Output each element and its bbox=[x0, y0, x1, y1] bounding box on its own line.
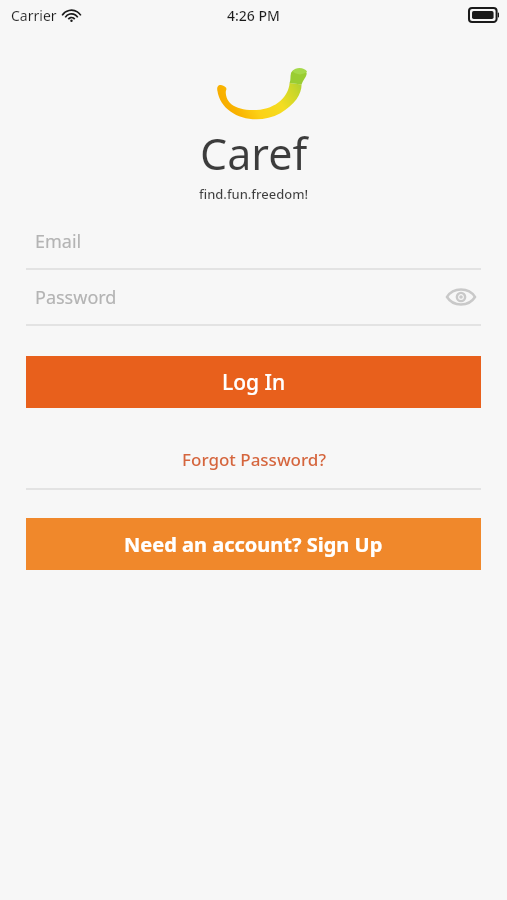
button[interactable]: Show password bbox=[441, 277, 481, 317]
button[interactable]: Password bbox=[26, 270, 481, 324]
staticText: Need an account? Sign Up bbox=[124, 531, 383, 558]
button[interactable]: Forgot Password? bbox=[26, 442, 481, 476]
staticText: Forgot Password? bbox=[182, 448, 326, 471]
button[interactable]: Log In bbox=[26, 356, 481, 408]
staticText: Password bbox=[35, 285, 117, 310]
staticText: Log In bbox=[222, 368, 286, 397]
staticText: 4:26 PM bbox=[227, 6, 280, 25]
staticText: find.fun.freedom! bbox=[199, 185, 309, 203]
staticText: Email bbox=[35, 229, 82, 254]
staticText: Carrier bbox=[11, 6, 57, 25]
button[interactable]: Need an account? Sign Up bbox=[26, 518, 481, 570]
staticText: Caref bbox=[200, 124, 308, 183]
button[interactable]: Email bbox=[26, 214, 481, 268]
